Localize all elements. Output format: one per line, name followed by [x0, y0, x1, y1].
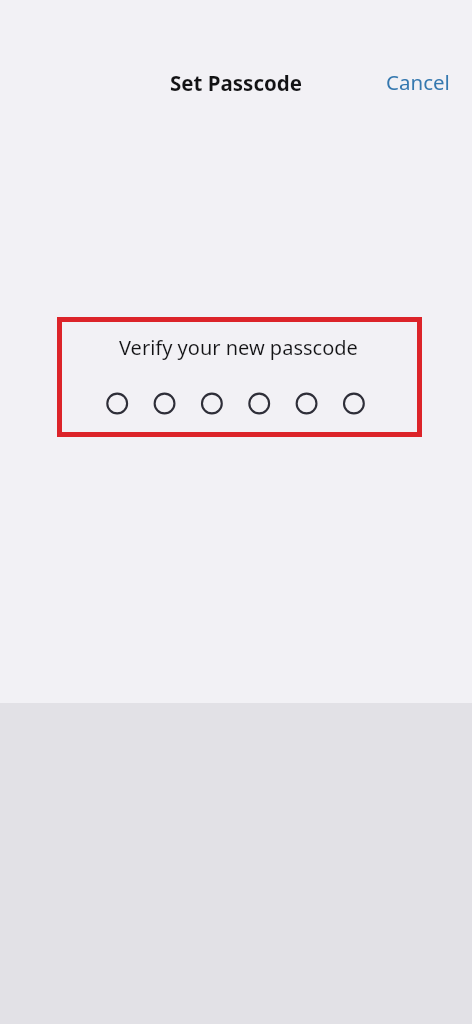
button[interactable]: Set Passcode [162, 63, 310, 103]
button[interactable]: Passcode entry field [105, 388, 373, 419]
staticText: Cancel [386, 68, 450, 96]
staticText: Set Passcode [170, 69, 302, 97]
button[interactable]: Cancel [368, 56, 472, 108]
staticText: Verify your new passcode [119, 334, 358, 361]
